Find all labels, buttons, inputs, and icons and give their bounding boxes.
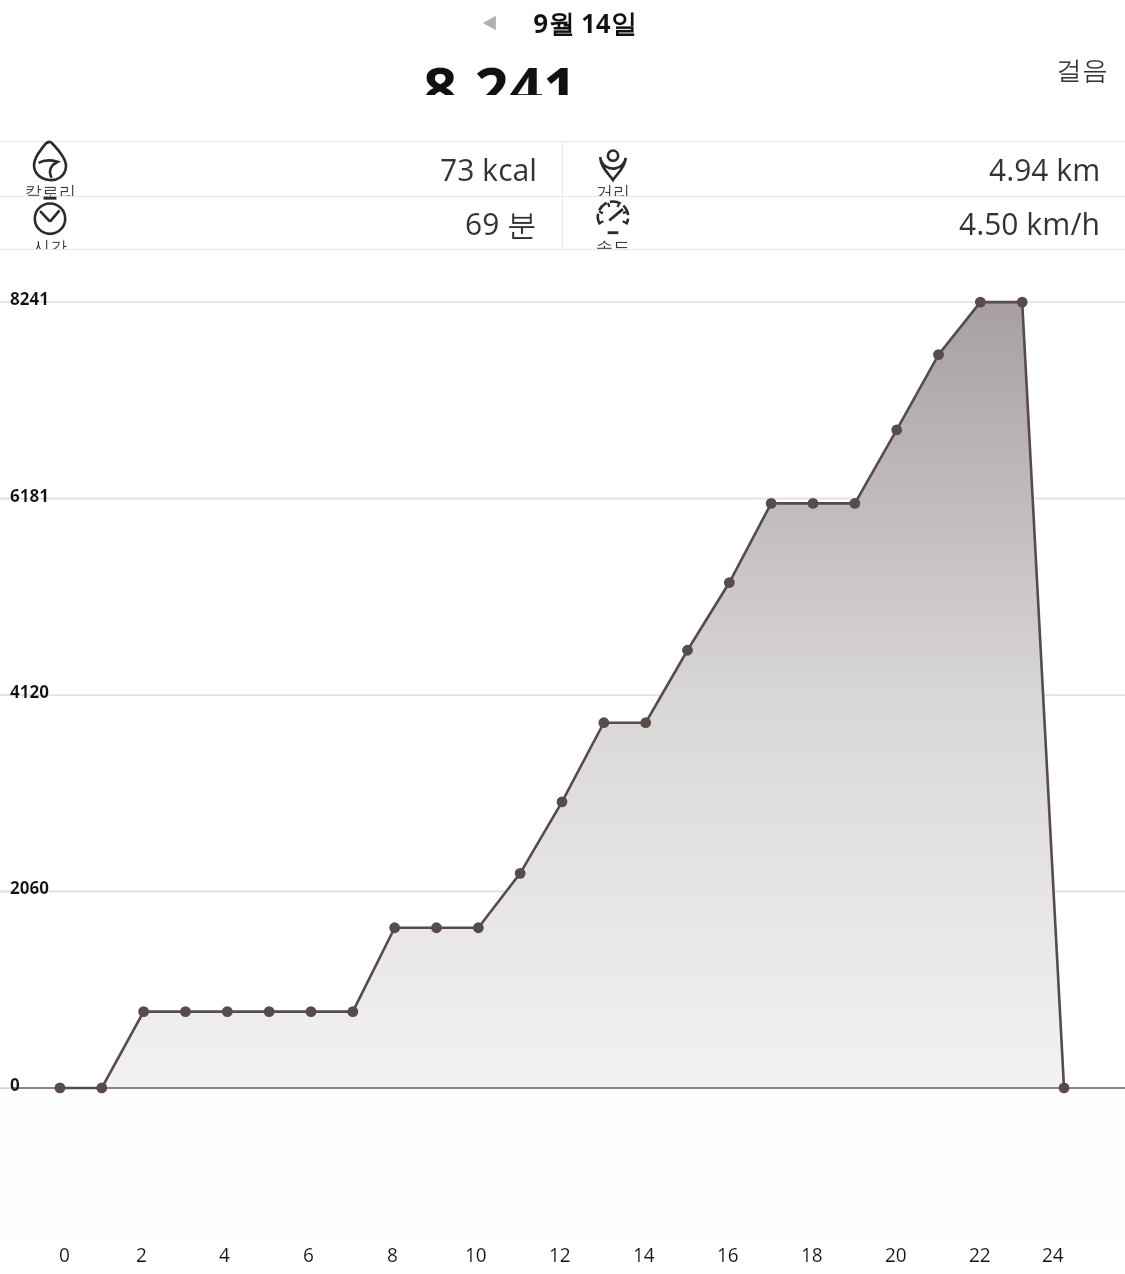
staticText: 9월 14일: [533, 5, 637, 41]
staticText: 0: [59, 1242, 70, 1268]
staticText: 16: [717, 1242, 739, 1268]
button[interactable]: 칼로리: [0, 142, 562, 196]
button[interactable]: 9월 14일: [512, 5, 658, 41]
staticText: 4120: [10, 680, 49, 703]
staticText: 4: [219, 1242, 230, 1268]
staticText: 8241: [10, 287, 49, 310]
button[interactable]: 8,241: [0, 46, 1125, 95]
staticText: 8: [387, 1242, 398, 1268]
staticText: 0: [10, 1073, 20, 1096]
staticText: 거리: [596, 182, 630, 196]
staticText: 2: [136, 1242, 147, 1268]
staticText: 18: [801, 1242, 823, 1268]
staticText: 칼로리: [25, 182, 76, 196]
staticText: 14: [633, 1242, 655, 1268]
staticText: 22: [969, 1242, 991, 1268]
staticText: 20: [885, 1242, 907, 1268]
staticText: 24: [1042, 1242, 1064, 1268]
button[interactable]: 속도: [563, 197, 1125, 249]
staticText: 6181: [10, 484, 49, 507]
staticText: 69 분: [465, 203, 538, 244]
staticText: 걸음: [1056, 54, 1108, 87]
staticText: 4.94 km: [989, 149, 1101, 190]
staticText: 10: [465, 1242, 487, 1268]
staticText: 8,241: [423, 46, 578, 95]
staticText: 4.50 km/h: [959, 203, 1101, 244]
staticText: 12: [549, 1242, 571, 1268]
staticText: 73 kcal: [440, 149, 538, 190]
staticText: 속도: [596, 237, 630, 249]
staticText: 6: [303, 1242, 314, 1268]
button[interactable]: 시간: [0, 197, 562, 249]
button[interactable]: 이전 날짜: [468, 1, 512, 45]
staticText: 시간: [33, 237, 67, 249]
staticText: 2060: [10, 876, 49, 899]
button[interactable]: 거리: [563, 142, 1125, 196]
